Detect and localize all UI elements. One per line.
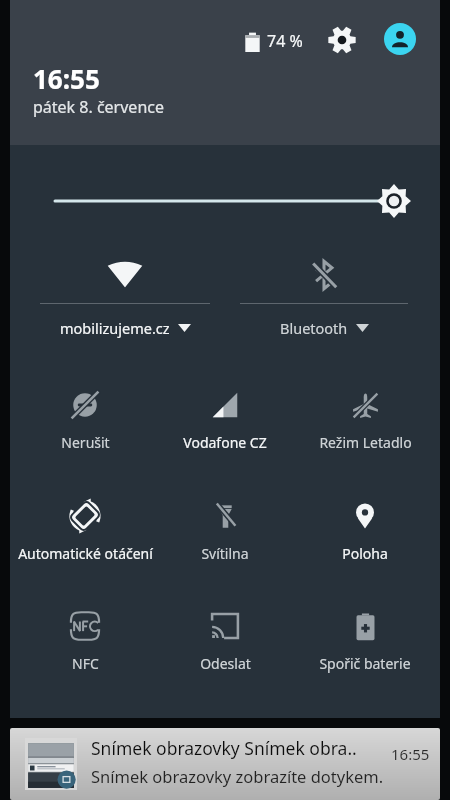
staticText: NFC bbox=[72, 654, 99, 673]
staticText: 16:55 bbox=[33, 61, 100, 96]
staticText: Spořič baterie bbox=[319, 654, 411, 673]
button[interactable]: Automatické otáčení bbox=[15, 499, 155, 575]
staticText: Svítilna bbox=[201, 544, 249, 563]
button[interactable]: Spořič baterie bbox=[295, 609, 435, 685]
button[interactable]: Snímek obrazovky Snímek obra.. bbox=[10, 728, 440, 800]
button[interactable]: NFC bbox=[15, 609, 155, 685]
staticText: Poloha bbox=[342, 544, 388, 563]
button[interactable]: Settings bbox=[323, 21, 361, 59]
button[interactable]: Poloha bbox=[295, 499, 435, 575]
staticText: pátek 8. července bbox=[33, 96, 164, 118]
staticText: 74 % bbox=[267, 30, 303, 52]
staticText: Vodafone CZ bbox=[183, 433, 267, 452]
button[interactable]: Bluetooth bbox=[240, 249, 408, 344]
button[interactable]: Odeslat bbox=[155, 609, 295, 685]
button[interactable]: Vodafone CZ bbox=[155, 388, 295, 464]
staticText: Snímek obrazovky zobrazíte dotykem. bbox=[91, 765, 384, 787]
staticText: Režim Letadlo bbox=[319, 433, 412, 452]
staticText: Nerušit bbox=[61, 433, 110, 452]
staticText: 16:55 bbox=[391, 744, 430, 764]
staticText: mobilizujeme.cz bbox=[60, 318, 170, 338]
staticText: Odeslat bbox=[200, 654, 251, 673]
button[interactable]: Brightness slider bbox=[10, 177, 440, 225]
button[interactable]: Svítilna bbox=[155, 499, 295, 575]
button[interactable]: Nerušit bbox=[15, 388, 155, 464]
button[interactable]: mobilizujeme.cz bbox=[40, 249, 210, 344]
button[interactable]: User profile bbox=[380, 19, 420, 59]
staticText: Bluetooth bbox=[280, 318, 348, 338]
staticText: Automatické otáčení bbox=[18, 544, 153, 563]
button[interactable]: Režim Letadlo bbox=[295, 388, 435, 464]
staticText: Snímek obrazovky Snímek obra.. bbox=[91, 736, 357, 760]
